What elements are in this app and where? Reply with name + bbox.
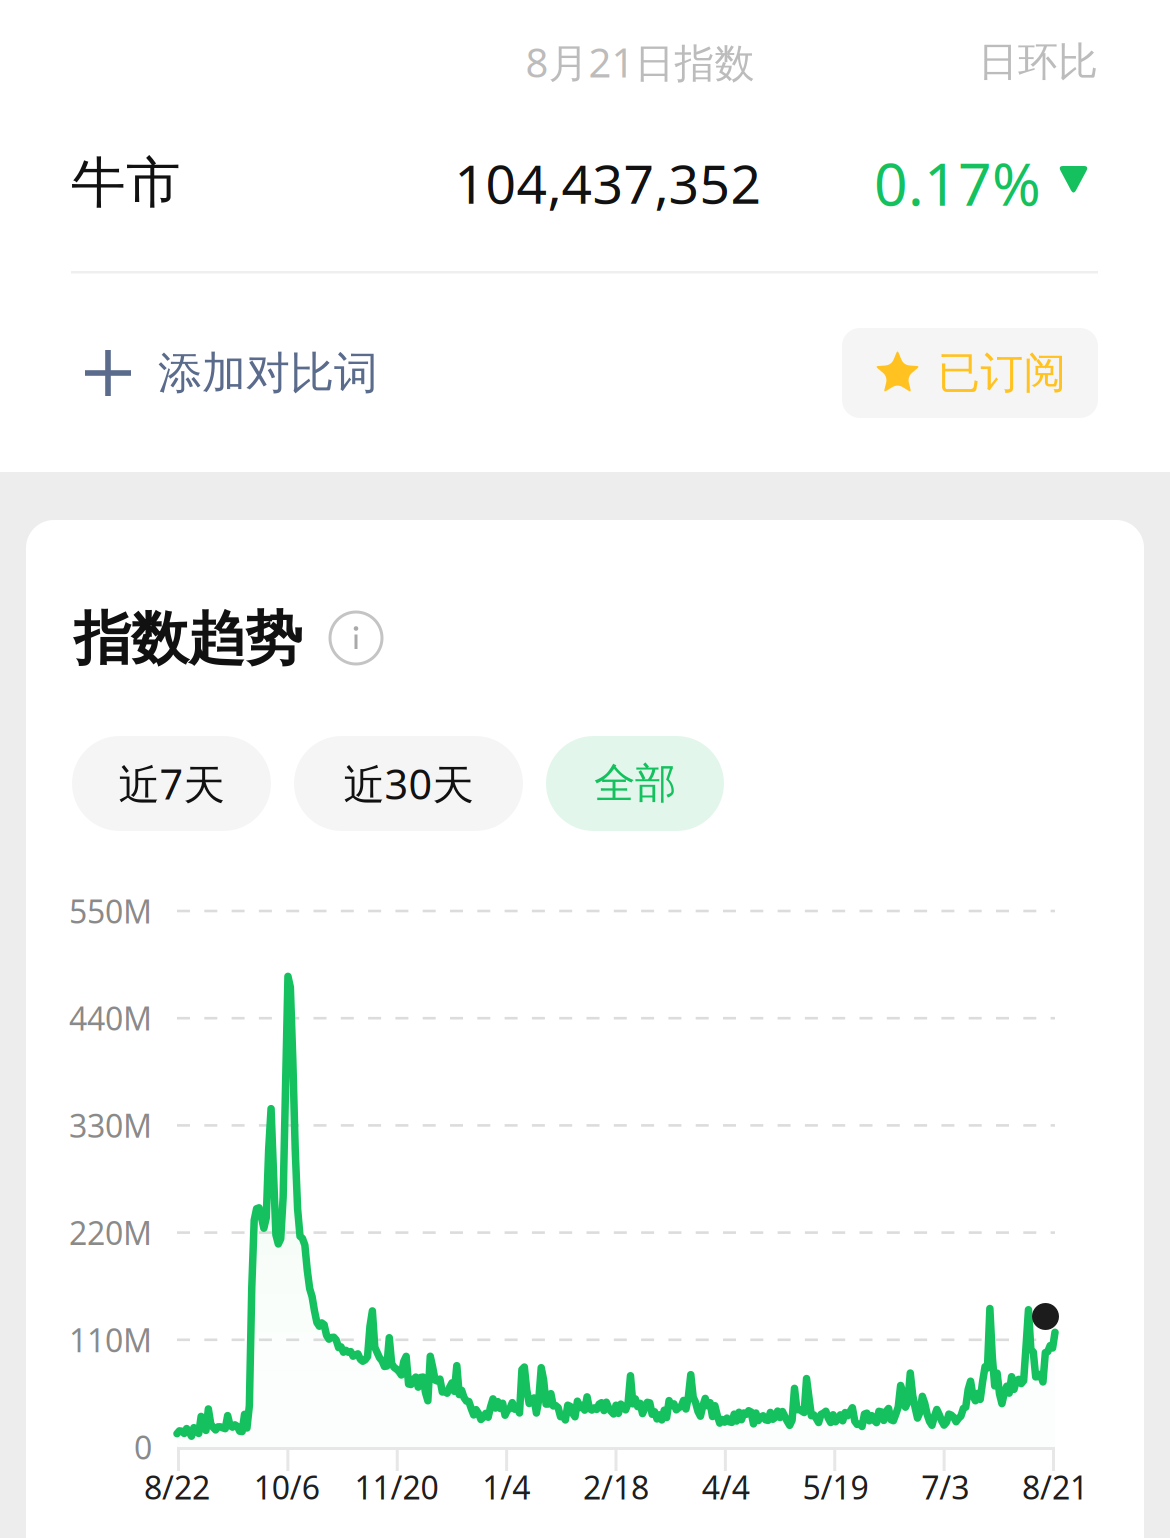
staticText: 7/3 (921, 1466, 969, 1508)
staticText: 牛市 (71, 149, 181, 216)
staticText: 8/22 (144, 1466, 210, 1508)
staticText: 添加对比词 (158, 346, 378, 400)
staticText: 1/4 (482, 1466, 530, 1508)
button[interactable]: 已订阅 (842, 328, 1098, 418)
staticText: 近7天 (118, 756, 224, 811)
staticText: 指数趋势 (74, 604, 302, 674)
staticText: 全部 (594, 758, 676, 809)
staticText: 日环比 (978, 37, 1098, 86)
button[interactable]: 全部 (546, 736, 724, 831)
staticText: 8月21日指数 (525, 35, 754, 88)
staticText: 440M (69, 997, 152, 1039)
staticText: 近30天 (343, 756, 473, 811)
staticText: 110M (69, 1319, 152, 1361)
staticText: 10/6 (254, 1466, 320, 1508)
staticText: 104,437,352 (454, 148, 761, 218)
staticText: 已订阅 (937, 347, 1066, 399)
staticText: 8/21 (1022, 1466, 1088, 1508)
staticText: 11/20 (354, 1466, 438, 1508)
button[interactable]: 近7天 (72, 736, 271, 831)
staticText: 550M (69, 890, 152, 932)
button[interactable]: 近30天 (294, 736, 523, 831)
staticText: 5/19 (802, 1466, 868, 1508)
staticText: 330M (69, 1104, 152, 1147)
staticText: 220M (69, 1211, 152, 1254)
staticText: 2/18 (583, 1466, 649, 1508)
staticText: 0 (134, 1426, 152, 1468)
staticText: 0.17% (874, 144, 1041, 222)
button[interactable]: 添加对比词 (80, 328, 382, 418)
staticText: 4/4 (702, 1466, 750, 1508)
